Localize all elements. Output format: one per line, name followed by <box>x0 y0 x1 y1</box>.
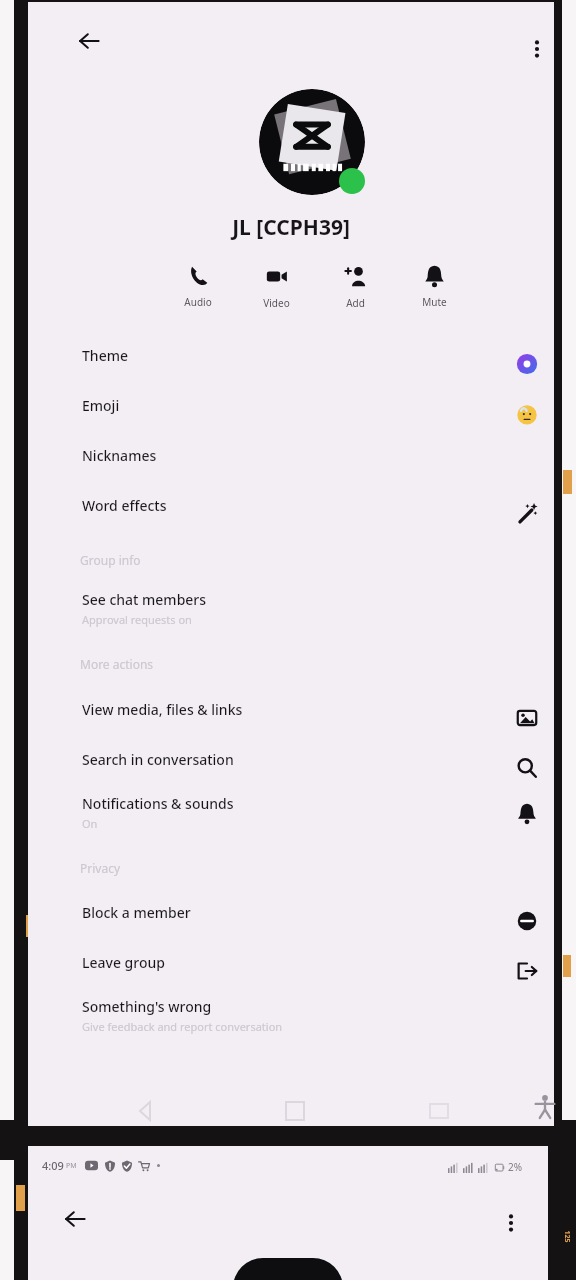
button[interactable]: Video <box>248 265 304 310</box>
button[interactable]: Leave group <box>56 949 554 993</box>
staticText: Theme <box>82 346 128 365</box>
staticText: Something's wrong <box>82 997 212 1016</box>
staticText: Approval requests on <box>82 612 192 627</box>
staticText: 4:09 <box>42 1158 64 1173</box>
staticText: Leave group <box>82 953 165 972</box>
button[interactable]: Search in conversation <box>56 746 554 790</box>
button[interactable]: View media, files & links <box>56 696 554 740</box>
staticText: PM <box>66 1161 77 1171</box>
button[interactable]: More options <box>490 1202 532 1244</box>
staticText: Group info <box>80 552 141 568</box>
staticText: Add <box>346 296 365 310</box>
button[interactable]: Nicknames <box>56 442 554 486</box>
staticText: View media, files & links <box>82 700 243 719</box>
button[interactable]: Group photo <box>259 89 365 195</box>
button[interactable]: Add <box>327 265 383 310</box>
staticText: Mute <box>422 295 447 309</box>
staticText: Nicknames <box>82 446 157 465</box>
staticText: See chat members <box>82 590 207 609</box>
staticText: 2% <box>508 1160 523 1174</box>
button[interactable]: Block a member <box>56 899 554 943</box>
button[interactable]: Audio <box>170 264 226 309</box>
staticText: Give feedback and report conversation <box>82 1019 283 1034</box>
button[interactable]: Back <box>68 20 110 62</box>
staticText: Audio <box>184 295 212 309</box>
staticText: Search in conversation <box>82 750 234 769</box>
button[interactable]: Theme <box>56 342 554 386</box>
staticText: Word effects <box>82 496 167 515</box>
button[interactable]: Word effects <box>56 492 554 536</box>
button[interactable]: Back <box>54 1198 96 1240</box>
button[interactable]: Emoji <box>56 392 554 436</box>
staticText: Block a member <box>82 903 191 922</box>
staticText: 125 <box>561 1230 571 1243</box>
button[interactable]: Something's wrong <box>56 993 554 1039</box>
staticText: Notifications & sounds <box>82 794 234 813</box>
button[interactable]: Notifications & sounds <box>56 790 554 836</box>
staticText: JL [CCPH39] <box>232 213 350 242</box>
staticText: On <box>82 816 98 831</box>
button[interactable]: Mute <box>406 264 462 309</box>
staticText: Privacy <box>80 860 121 876</box>
button[interactable]: See chat members <box>56 586 554 632</box>
staticText: More actions <box>80 656 154 672</box>
staticText: Emoji <box>82 396 120 415</box>
button[interactable]: More options <box>516 28 558 70</box>
staticText: Video <box>263 296 290 310</box>
